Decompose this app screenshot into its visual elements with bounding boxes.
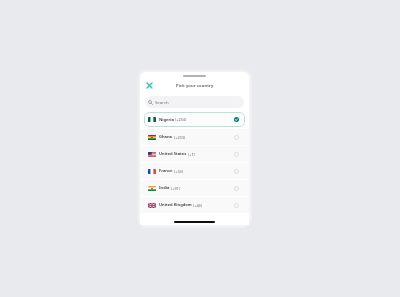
staticText: Search <box>155 99 169 105</box>
staticText: United Kingdom <box>159 202 192 208</box>
button[interactable]: United States <box>140 146 249 162</box>
staticText: United States <box>159 151 187 157</box>
staticText: India <box>159 185 170 191</box>
button[interactable]: Search <box>145 96 244 108</box>
staticText: (+234) <box>175 117 187 122</box>
staticText: France <box>159 168 173 174</box>
button[interactable]: Nigeria <box>144 112 245 127</box>
button[interactable]: France <box>140 163 249 179</box>
button[interactable]: United Kingdom <box>140 197 249 213</box>
button[interactable]: Close <box>144 80 155 91</box>
staticText: (+91) <box>171 186 180 191</box>
staticText: Pick your country <box>176 83 214 89</box>
button[interactable]: India <box>140 180 249 196</box>
button[interactable]: Ghana <box>140 129 249 145</box>
staticText: (+44) <box>193 203 202 208</box>
staticText: Ghana <box>159 134 173 140</box>
staticText: (+233) <box>174 135 186 140</box>
staticText: (+33) <box>174 169 183 174</box>
staticText: Nigeria <box>159 117 174 123</box>
staticText: (+1) <box>188 152 195 157</box>
